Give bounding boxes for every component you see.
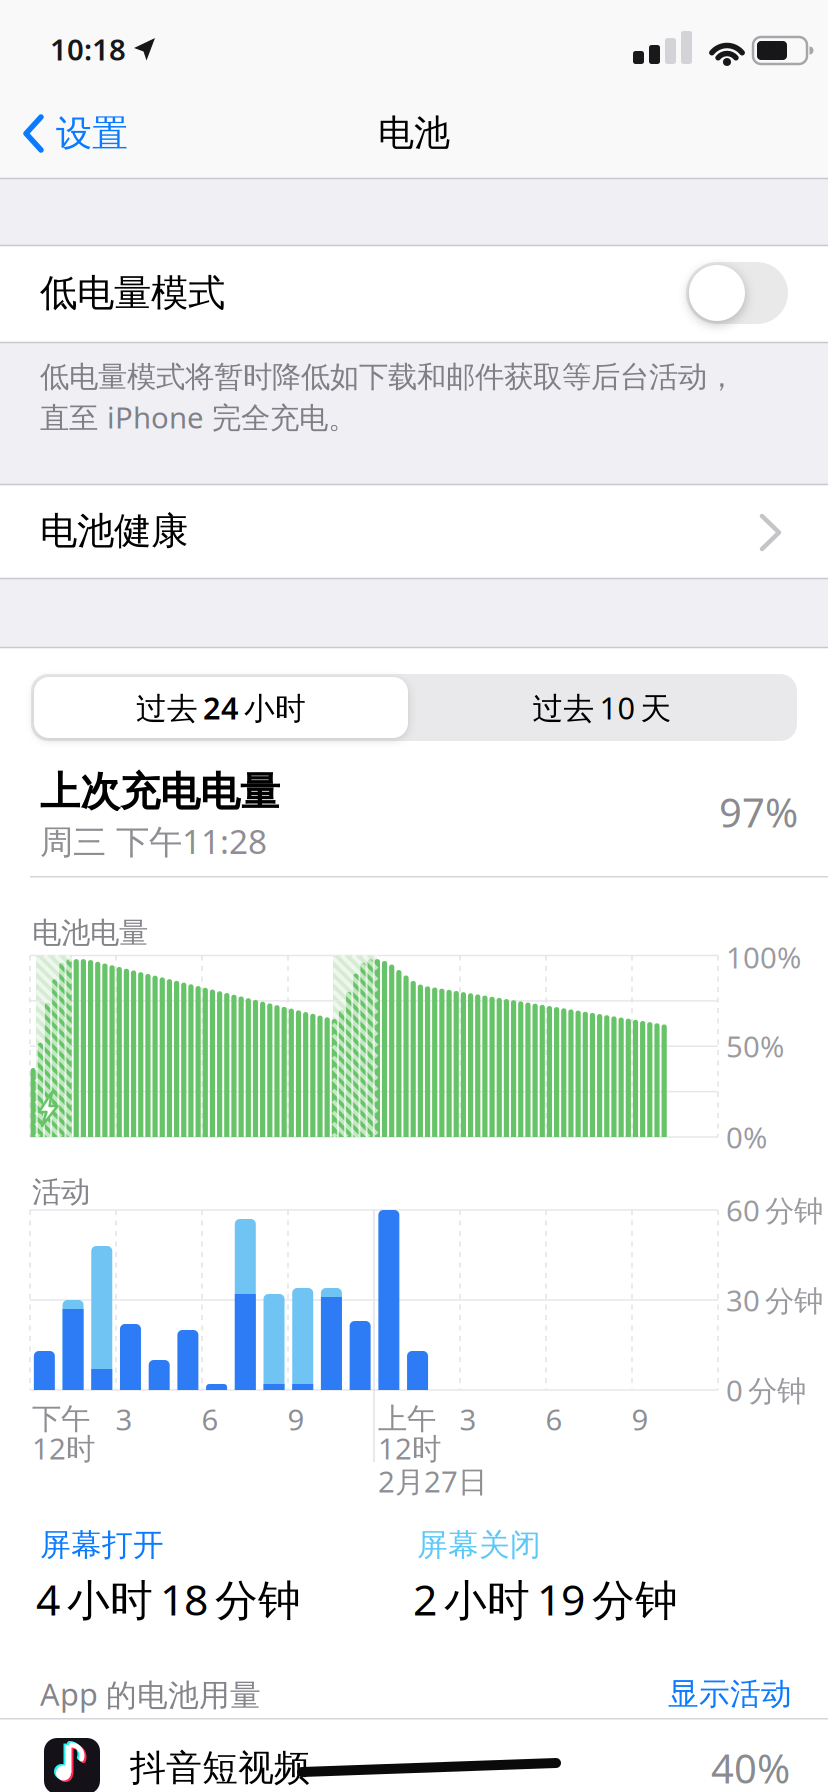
staticText: 9	[287, 1399, 304, 1438]
staticText: 2月27日	[378, 1461, 487, 1500]
staticText: 50%	[726, 1026, 784, 1065]
staticText: 2 小时 19 分钟	[413, 1571, 678, 1627]
staticText: 100%	[726, 937, 801, 976]
staticText: 0%	[726, 1117, 767, 1156]
staticText: 3	[115, 1399, 132, 1438]
button[interactable]: 抖音短视频	[0, 1718, 828, 1792]
staticText: 12时	[378, 1428, 441, 1467]
staticText: 过去 24 小时	[136, 687, 306, 728]
staticText: 10:18	[50, 29, 126, 68]
staticText: 电池电量	[32, 915, 148, 951]
staticText: 直至 iPhone 完全充电。	[40, 397, 357, 436]
staticText: 6	[545, 1399, 562, 1438]
staticText: 3	[459, 1399, 476, 1438]
staticText: 下午	[32, 1401, 90, 1437]
staticText: 40%	[711, 1741, 790, 1792]
staticText: 低电量模式	[40, 270, 225, 316]
staticText: 电池健康	[40, 508, 188, 554]
staticText: App 的电池用量	[40, 1674, 261, 1714]
staticText: 0 分钟	[726, 1370, 806, 1409]
staticText: 屏幕关闭	[417, 1526, 541, 1564]
staticText: 抖音短视频	[130, 1746, 310, 1790]
staticText: 活动	[32, 1174, 90, 1210]
staticText: 60 分钟	[726, 1190, 823, 1229]
staticText: 6	[201, 1399, 218, 1438]
staticText: 上午	[378, 1401, 436, 1437]
staticText: 设置	[56, 111, 128, 156]
staticText: 低电量模式将暂时降低如下载和邮件获取等后台活动，	[40, 359, 736, 395]
staticText: 30 分钟	[726, 1280, 823, 1319]
button[interactable]: 过去 24 小时	[34, 677, 408, 738]
staticText: 屏幕打开	[40, 1526, 164, 1564]
staticText: 4 小时 18 分钟	[36, 1571, 301, 1627]
button[interactable]	[686, 262, 788, 324]
staticText: 12时	[32, 1428, 95, 1467]
staticText: 电池	[378, 111, 450, 155]
staticText: 上次充电电量	[40, 767, 280, 816]
staticText: 97%	[719, 785, 798, 838]
staticText: 过去 10 天	[532, 687, 671, 728]
button[interactable]: 设置	[0, 89, 160, 177]
staticText: 周三 下午11:28	[40, 819, 267, 863]
button[interactable]: 过去 10 天	[412, 677, 792, 738]
staticText: 显示活动	[668, 1675, 792, 1713]
button[interactable]: 电池健康	[0, 484, 828, 578]
staticText: 9	[631, 1399, 648, 1438]
button[interactable]: 显示活动	[668, 1675, 792, 1713]
